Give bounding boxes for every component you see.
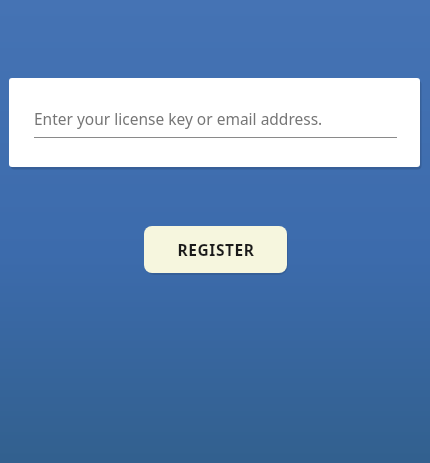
staticText: REGISTER (177, 239, 255, 260)
button[interactable]: REGISTER (144, 226, 287, 273)
button[interactable]: Enter your license key or email address. (34, 108, 397, 138)
staticText: Enter your license key or email address. (34, 108, 323, 129)
